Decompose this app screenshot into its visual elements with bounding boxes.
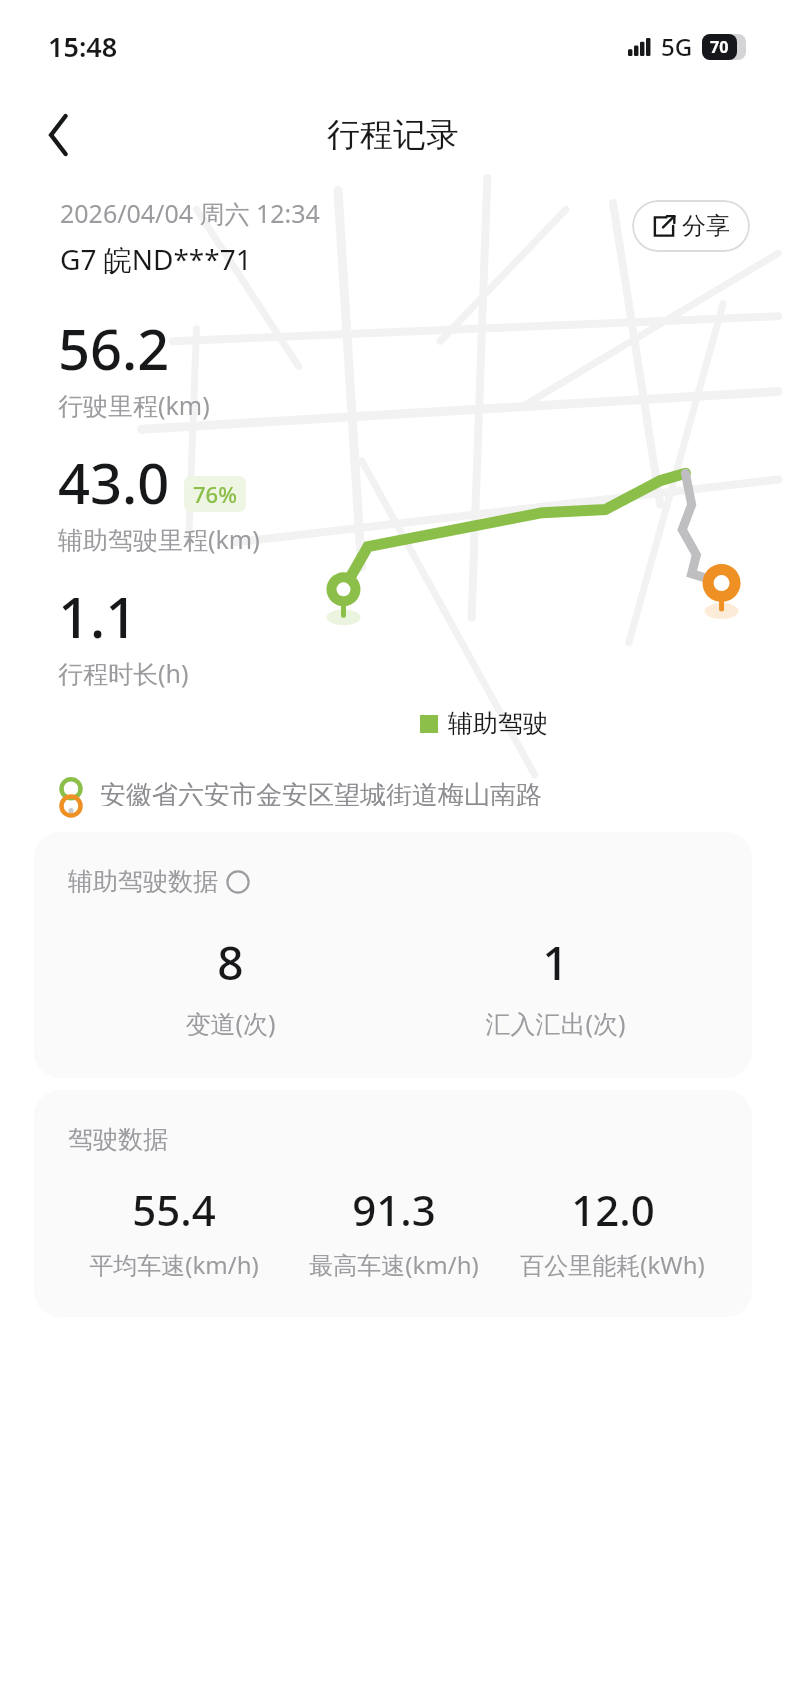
button[interactable]: 辅助驾驶数据 xyxy=(34,832,752,1078)
staticText: 辅助驾驶里程(km) xyxy=(58,522,260,556)
staticText: 最高车速(km/h) xyxy=(309,1248,479,1281)
staticText: 驾驶数据 xyxy=(68,1124,168,1155)
staticText: 平均车速(km/h) xyxy=(89,1248,259,1281)
staticText: 安徽省六安市金安区望城街道梅山南路 xyxy=(100,779,542,806)
staticText: G7 皖ND***71 xyxy=(60,240,252,278)
staticText: 1 xyxy=(542,931,569,994)
staticText: 70 xyxy=(710,36,729,58)
staticText: 76% xyxy=(193,479,237,509)
staticText: 行驶里程(km) xyxy=(58,388,210,422)
staticText: 12.0 xyxy=(571,1181,655,1238)
staticText: 辅助驾驶数据 xyxy=(68,866,218,897)
staticText: 分享 xyxy=(682,211,730,241)
staticText: 15:48 xyxy=(48,28,118,65)
staticText: 行程时长(h) xyxy=(58,656,189,690)
button[interactable]: 驾驶数据 xyxy=(34,1090,752,1317)
staticText: 行程记录 xyxy=(327,114,459,156)
staticText: 43.0 xyxy=(58,444,170,520)
button[interactable]: 分享 xyxy=(632,200,750,252)
staticText: 辅助驾驶 xyxy=(448,708,548,739)
staticText: 1.1 xyxy=(58,578,138,654)
staticText: 91.3 xyxy=(352,1181,436,1238)
staticText: 55.4 xyxy=(132,1181,216,1238)
staticText: 8 xyxy=(217,931,244,994)
staticText: 百公里能耗(kWh) xyxy=(520,1248,705,1281)
staticText: 5G xyxy=(661,30,693,63)
staticText: 变道(次) xyxy=(185,1006,276,1040)
staticText: 汇入汇出(次) xyxy=(485,1006,626,1040)
staticText: 56.2 xyxy=(58,310,170,386)
staticText: 2026/04/04 周六 12:34 xyxy=(60,196,320,230)
button[interactable]: Back xyxy=(30,106,88,164)
